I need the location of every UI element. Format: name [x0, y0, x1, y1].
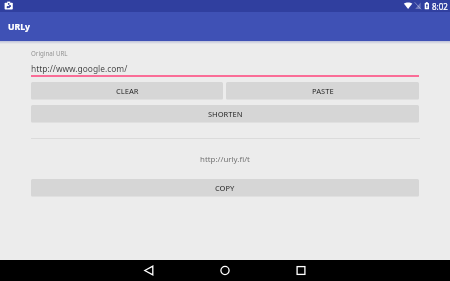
button[interactable]: Recent apps: [292, 260, 310, 281]
staticText: CLEAR: [116, 86, 139, 96]
button[interactable]: SHORTEN: [31, 105, 419, 122]
staticText: 8:02: [432, 1, 448, 12]
button[interactable]: COPY: [31, 179, 419, 196]
staticText: PASTE: [312, 86, 334, 96]
staticText: http://www.google.com/: [31, 63, 128, 74]
staticText: http://urly.fi/t: [0, 154, 450, 165]
button[interactable]: Home: [216, 260, 234, 281]
staticText: COPY: [215, 183, 235, 193]
button[interactable]: CLEAR: [31, 82, 223, 99]
button[interactable]: Original URL: [31, 45, 419, 77]
button[interactable]: PASTE: [226, 82, 419, 99]
staticText: URLy: [8, 21, 30, 33]
staticText: Original URL: [31, 49, 68, 57]
button[interactable]: Back: [140, 260, 158, 281]
staticText: SHORTEN: [208, 109, 243, 119]
